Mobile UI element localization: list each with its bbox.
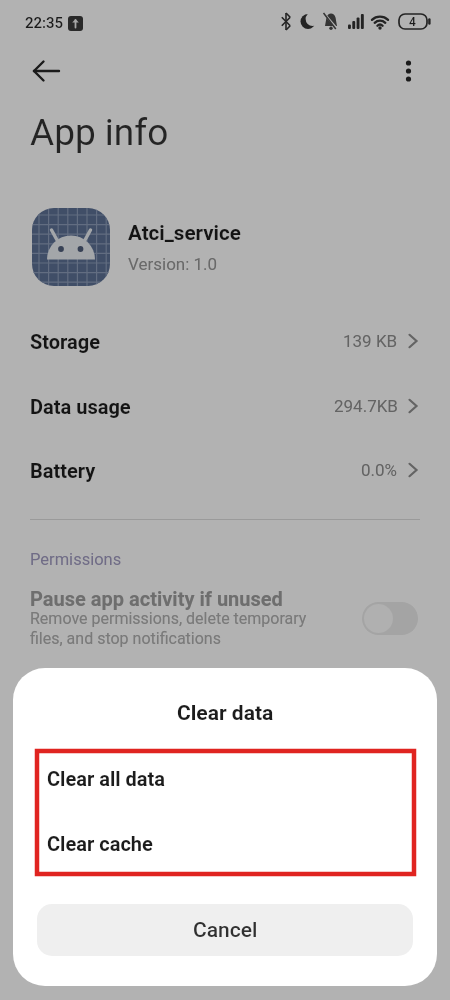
button[interactable]: Cancel (37, 904, 413, 956)
staticText: Clear data (177, 701, 274, 726)
staticText: App info (30, 111, 169, 154)
staticText: Storage (30, 330, 101, 353)
staticText: Clear cache (47, 832, 153, 855)
staticText: 4 (409, 15, 416, 29)
button[interactable] (396, 58, 421, 84)
staticText: Remove permissions, delete temporary fil… (30, 609, 307, 648)
button[interactable]: Data usage (0, 384, 450, 428)
staticText: Permissions (30, 550, 122, 569)
button[interactable]: Clear cache (13, 811, 437, 875)
staticText: 22:35 (25, 14, 64, 32)
staticText: 294.7KB (334, 396, 398, 416)
button[interactable]: Pause app activity if unused (0, 585, 450, 655)
button[interactable]: Clear all data (13, 746, 437, 810)
button[interactable] (28, 57, 62, 85)
staticText: Atci_service (128, 221, 241, 245)
staticText: Data usage (30, 395, 131, 418)
button[interactable]: Storage (0, 319, 450, 363)
staticText: Version: 1.0 (128, 254, 218, 274)
staticText: Pause app activity if unused (30, 587, 283, 610)
staticText: 0.0% (361, 460, 398, 480)
staticText: Cancel (193, 918, 258, 943)
staticText: 139 KB (343, 331, 398, 351)
staticText: Clear all data (47, 767, 166, 790)
button[interactable]: Battery (0, 448, 450, 492)
button[interactable] (362, 602, 418, 635)
staticText: Battery (30, 459, 96, 482)
